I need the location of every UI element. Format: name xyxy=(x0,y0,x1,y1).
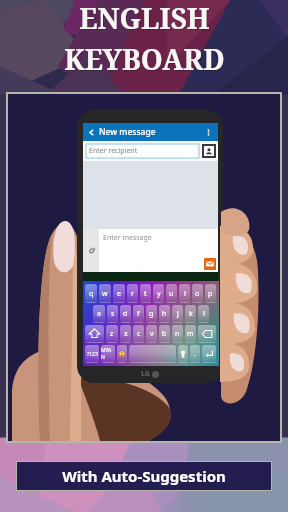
staticText: r xyxy=(131,289,134,299)
staticText: MYAN xyxy=(101,347,115,361)
button[interactable]: a xyxy=(93,305,105,323)
button[interactable]: v xyxy=(146,325,157,343)
button[interactable]: Theme xyxy=(178,345,188,363)
staticText: c xyxy=(137,329,141,339)
button[interactable]: c xyxy=(133,325,144,343)
staticText: Enter recipient xyxy=(89,146,138,156)
button[interactable]: s xyxy=(107,305,118,323)
button[interactable]: n xyxy=(172,325,183,343)
staticText: e xyxy=(117,289,121,299)
staticText: k xyxy=(189,309,193,319)
staticText: i xyxy=(184,289,186,299)
button[interactable]: Back xyxy=(83,123,218,141)
staticText: ENGLISH xyxy=(79,0,210,37)
button[interactable]: i xyxy=(179,284,190,303)
button[interactable]: u xyxy=(166,284,177,303)
button[interactable]: m xyxy=(185,325,196,343)
button[interactable]: z xyxy=(106,325,118,343)
staticText: New message xyxy=(99,126,156,138)
button[interactable]: Choose contact xyxy=(203,145,215,157)
staticText: ?123 xyxy=(87,351,98,358)
staticText: f xyxy=(137,309,140,319)
staticText: v xyxy=(150,329,154,339)
other: More options xyxy=(204,128,213,137)
staticText: b xyxy=(162,329,167,339)
staticText: l xyxy=(203,309,205,319)
staticText: LG xyxy=(141,369,150,379)
button[interactable]: Attach xyxy=(83,229,99,272)
staticText: j xyxy=(177,309,179,319)
button[interactable]: o xyxy=(192,284,203,303)
staticText: h xyxy=(162,309,167,319)
staticText: p xyxy=(208,289,213,299)
button[interactable]: Enter recipient xyxy=(86,144,199,158)
button[interactable]: y xyxy=(153,284,164,303)
staticText: t xyxy=(144,289,147,299)
staticText: With Auto-Suggestion xyxy=(62,466,226,486)
button[interactable]: j xyxy=(172,305,183,323)
staticText: q xyxy=(89,289,94,299)
button[interactable]: ?123 xyxy=(85,345,99,363)
button[interactable]: Shift xyxy=(85,325,104,343)
staticText: u xyxy=(169,289,174,299)
staticText: x xyxy=(124,329,128,339)
button[interactable]: Backspace xyxy=(198,325,216,343)
button[interactable]: Emoji xyxy=(117,345,127,363)
button[interactable]: With Auto-Suggestion xyxy=(17,462,271,490)
button[interactable]: x xyxy=(120,325,131,343)
button[interactable]: . xyxy=(190,345,200,363)
staticText: . xyxy=(194,349,196,359)
button[interactable]: k xyxy=(185,305,196,323)
button[interactable]: h xyxy=(159,305,170,323)
button[interactable]: q xyxy=(85,284,97,303)
button[interactable]: t xyxy=(140,284,151,303)
staticText: w xyxy=(102,289,108,299)
button[interactable]: p xyxy=(205,284,216,303)
staticText: m xyxy=(187,329,194,339)
staticText: a xyxy=(97,309,101,319)
staticText: KEYBOARD xyxy=(64,40,225,78)
other: Back xyxy=(88,129,95,136)
staticText: ENGLISH xyxy=(80,0,211,38)
staticText: o xyxy=(195,289,200,299)
button[interactable]: g xyxy=(146,305,157,323)
staticText: g xyxy=(149,309,154,319)
button[interactable]: w xyxy=(99,284,111,303)
button[interactable]: d xyxy=(120,305,131,323)
staticText: s xyxy=(111,309,115,319)
button[interactable]: Send xyxy=(204,258,216,270)
staticText: KEYBOARD xyxy=(65,41,226,79)
staticText: Enter message xyxy=(103,233,152,243)
button[interactable]: Enter xyxy=(202,345,216,363)
button[interactable]: r xyxy=(127,284,138,303)
button[interactable]: b xyxy=(159,325,170,343)
staticText: d xyxy=(123,309,128,319)
button[interactable]: e xyxy=(113,284,125,303)
button[interactable] xyxy=(129,345,176,363)
staticText: z xyxy=(110,329,114,339)
button[interactable]: l xyxy=(198,305,209,323)
staticText: y xyxy=(157,289,161,299)
staticText: n xyxy=(175,329,180,339)
button[interactable]: f xyxy=(133,305,144,323)
button[interactable]: MYAN xyxy=(101,345,115,363)
